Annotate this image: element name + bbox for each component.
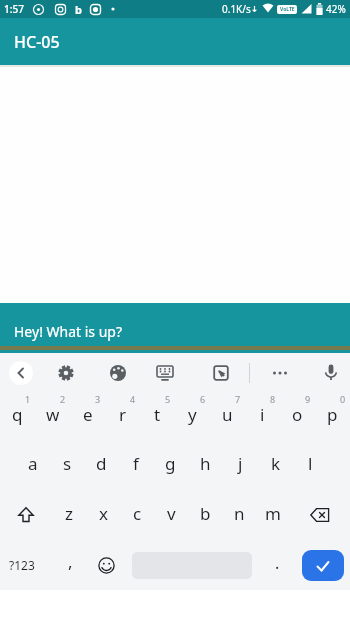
staticText: 0	[340, 393, 346, 405]
staticText: h	[200, 452, 211, 475]
button[interactable]: .	[252, 540, 302, 590]
button[interactable]: g	[153, 441, 188, 490]
staticText: Hey! What is up?	[14, 322, 123, 341]
staticText: r	[119, 403, 127, 426]
button[interactable]: j	[223, 441, 258, 490]
staticText: u	[222, 403, 233, 426]
button[interactable]	[322, 364, 339, 381]
staticText: p	[327, 403, 338, 426]
staticText: b	[75, 2, 82, 17]
staticText: m	[265, 502, 281, 525]
staticText: e	[83, 403, 93, 426]
staticText: z	[65, 502, 73, 525]
staticText: l	[308, 452, 313, 475]
button[interactable]: s	[50, 441, 84, 490]
button[interactable]: k	[258, 441, 293, 490]
staticText: q	[12, 403, 23, 426]
staticText: VoLTE	[280, 6, 295, 13]
staticText: g	[165, 452, 176, 475]
button[interactable]	[302, 550, 344, 581]
staticText: 2	[60, 393, 66, 405]
staticText: n	[234, 502, 245, 525]
staticText: ,	[68, 550, 73, 573]
button[interactable]: q	[0, 392, 35, 441]
staticText: c	[133, 502, 142, 525]
button[interactable]: r	[105, 392, 140, 441]
staticText: 9	[305, 393, 311, 405]
button[interactable]: f	[118, 441, 153, 490]
button[interactable]: w	[35, 392, 70, 441]
staticText: i	[260, 403, 265, 426]
staticText: a	[28, 452, 38, 475]
staticText: .	[275, 552, 280, 574]
staticText: v	[167, 502, 176, 525]
button[interactable]: h	[188, 441, 223, 490]
staticText: ?123	[9, 557, 35, 573]
staticText: HC-05	[14, 31, 60, 53]
button[interactable]: u	[210, 392, 245, 441]
button[interactable]: d	[84, 441, 118, 490]
staticText: f	[133, 452, 139, 475]
staticText: o	[292, 403, 303, 426]
button[interactable]: o	[280, 392, 315, 441]
button[interactable]: Hey! What is up?	[0, 303, 350, 353]
button[interactable]: ,	[44, 540, 88, 590]
staticText: 3	[95, 393, 101, 405]
staticText: t	[154, 403, 161, 426]
button[interactable]	[213, 365, 229, 381]
button[interactable]	[156, 364, 174, 382]
button[interactable]	[271, 364, 289, 382]
staticText: 8	[270, 393, 276, 405]
staticText: 5	[165, 393, 171, 405]
button[interactable]	[0, 490, 51, 540]
button[interactable]: e	[70, 392, 105, 441]
button[interactable]: c	[120, 490, 154, 540]
staticText: w	[46, 403, 60, 426]
staticText: j	[238, 452, 243, 475]
button[interactable]: ?123	[0, 540, 44, 590]
staticText: d	[96, 452, 107, 475]
button[interactable]: z	[51, 490, 86, 540]
staticText: y	[188, 403, 197, 426]
button[interactable]: i	[245, 392, 280, 441]
button[interactable]: y	[175, 392, 210, 441]
button[interactable]: x	[86, 490, 120, 540]
button[interactable]	[290, 490, 350, 540]
staticText: k	[271, 452, 281, 475]
staticText: 0.1K/s	[222, 2, 251, 16]
staticText: s	[63, 452, 72, 475]
staticText: b	[200, 502, 211, 525]
button[interactable]	[57, 364, 75, 382]
button[interactable]: p	[315, 392, 350, 441]
staticText: x	[99, 502, 108, 525]
button[interactable]: m	[256, 490, 290, 540]
staticText: 1:57	[4, 2, 24, 16]
staticText: 1	[25, 393, 31, 405]
button[interactable]: b	[188, 490, 222, 540]
button[interactable]: v	[154, 490, 188, 540]
button[interactable]	[109, 364, 127, 382]
staticText: 6	[200, 393, 206, 405]
staticText: 42%	[326, 2, 346, 16]
button[interactable]: t	[140, 392, 175, 441]
button[interactable]: a	[16, 441, 50, 490]
staticText: 4	[130, 393, 136, 405]
button[interactable]: l	[293, 441, 328, 490]
button[interactable]: n	[222, 490, 256, 540]
button[interactable]	[9, 361, 33, 385]
staticText: 7	[235, 393, 241, 405]
button[interactable]	[88, 540, 124, 590]
